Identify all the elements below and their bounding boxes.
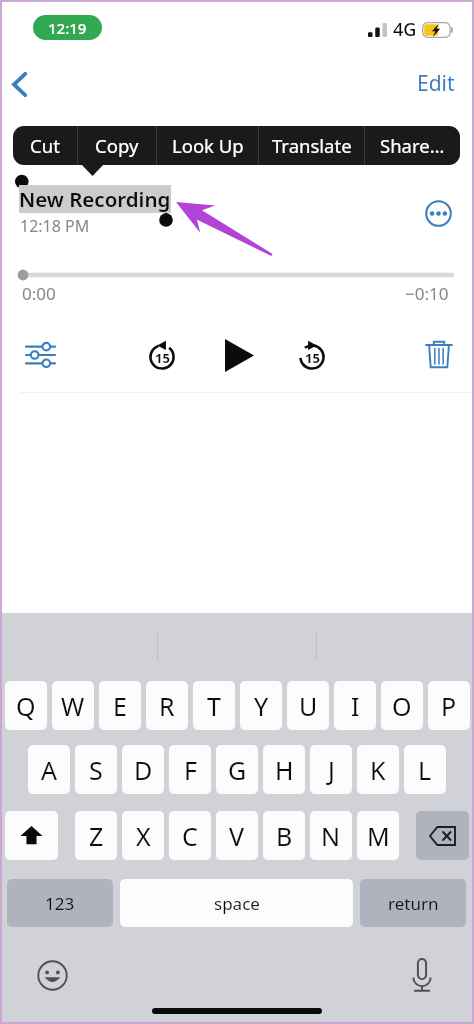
button[interactable]: V: [216, 811, 258, 860]
staticText: 4G: [393, 17, 417, 42]
button[interactable]: Cut: [13, 126, 77, 165]
staticText: V: [229, 819, 245, 853]
staticText: F: [184, 753, 197, 787]
staticText: O: [392, 689, 412, 723]
button[interactable]: Play: [213, 329, 265, 381]
button[interactable]: M: [357, 811, 399, 860]
button[interactable]: Copy: [78, 126, 156, 165]
button[interactable]: A: [28, 745, 70, 794]
button[interactable]: Edit: [407, 63, 465, 103]
button[interactable]: R: [146, 681, 188, 730]
button[interactable]: G: [216, 745, 258, 794]
staticText: T: [207, 689, 221, 723]
button[interactable]: More options: [419, 194, 457, 232]
staticText: N: [321, 819, 341, 853]
button[interactable]: J: [310, 745, 352, 794]
staticText: Copy: [95, 133, 139, 158]
staticText: Translate: [272, 133, 352, 158]
staticText: L: [418, 753, 432, 787]
button[interactable]: return: [360, 879, 466, 927]
staticText: Y: [254, 689, 269, 723]
button[interactable]: 123: [7, 879, 113, 927]
button[interactable]: W: [52, 681, 94, 730]
button[interactable]: Back: [0, 63, 40, 105]
staticText: 12:19: [48, 18, 87, 38]
staticText: G: [228, 753, 247, 787]
button[interactable]: Playback settings: [16, 331, 64, 379]
button[interactable]: Z: [75, 811, 117, 860]
staticText: A: [41, 753, 57, 787]
staticText: K: [370, 753, 386, 787]
staticText: New Recording: [19, 185, 171, 213]
staticText: 123: [45, 892, 75, 915]
button[interactable]: U: [287, 681, 329, 730]
button[interactable]: Skip forward 15 seconds: [288, 331, 336, 379]
button[interactable]: space: [120, 879, 353, 927]
staticText: C: [182, 819, 198, 853]
button[interactable]: N: [310, 811, 352, 860]
button[interactable]: E: [99, 681, 141, 730]
button[interactable]: Dictation: [400, 953, 444, 997]
button[interactable]: S: [75, 745, 117, 794]
button[interactable]: Emoji keyboard: [30, 953, 74, 997]
staticText: space: [214, 892, 260, 915]
button[interactable]: L: [404, 745, 446, 794]
button[interactable]: X: [122, 811, 164, 860]
staticText: X: [136, 819, 151, 853]
button[interactable]: Backspace: [416, 811, 469, 860]
staticText: E: [113, 689, 127, 723]
staticText: U: [299, 689, 318, 723]
staticText: Edit: [417, 69, 455, 98]
staticText: J: [328, 753, 335, 787]
staticText: S: [89, 753, 103, 787]
staticText: Z: [89, 819, 104, 853]
button[interactable]: Delete: [415, 330, 463, 378]
staticText: 15: [155, 349, 170, 367]
button[interactable]: H: [263, 745, 305, 794]
button[interactable]: B: [263, 811, 305, 860]
staticText: Share…: [380, 133, 445, 158]
button[interactable]: Q: [5, 681, 47, 730]
button[interactable]: K: [357, 745, 399, 794]
button[interactable]: T: [193, 681, 235, 730]
button[interactable]: Translate: [259, 126, 364, 165]
staticText: H: [275, 753, 294, 787]
staticText: 0:00: [22, 282, 56, 305]
button[interactable]: Shift: [5, 811, 58, 860]
staticText: W: [61, 689, 85, 723]
button[interactable]: C: [169, 811, 211, 860]
staticText: Cut: [30, 133, 60, 158]
staticText: Look Up: [172, 133, 244, 158]
staticText: return: [388, 892, 439, 915]
staticText: −0:10: [405, 282, 449, 305]
staticText: R: [159, 689, 175, 723]
staticText: I: [351, 689, 360, 723]
staticText: 15: [305, 349, 320, 367]
button[interactable]: Share…: [365, 126, 460, 165]
button[interactable]: Skip back 15 seconds: [138, 331, 186, 379]
button[interactable]: Look Up: [157, 126, 258, 165]
staticText: P: [441, 689, 457, 723]
staticText: M: [367, 819, 390, 853]
staticText: B: [276, 819, 293, 853]
button[interactable]: D: [122, 745, 164, 794]
button[interactable]: O: [381, 681, 423, 730]
button[interactable]: I: [334, 681, 376, 730]
staticText: D: [134, 753, 153, 787]
staticText: 12:18 PM: [20, 215, 90, 237]
staticText: Q: [16, 689, 36, 723]
button[interactable]: P: [428, 681, 470, 730]
button[interactable]: F: [169, 745, 211, 794]
button[interactable]: Y: [240, 681, 282, 730]
